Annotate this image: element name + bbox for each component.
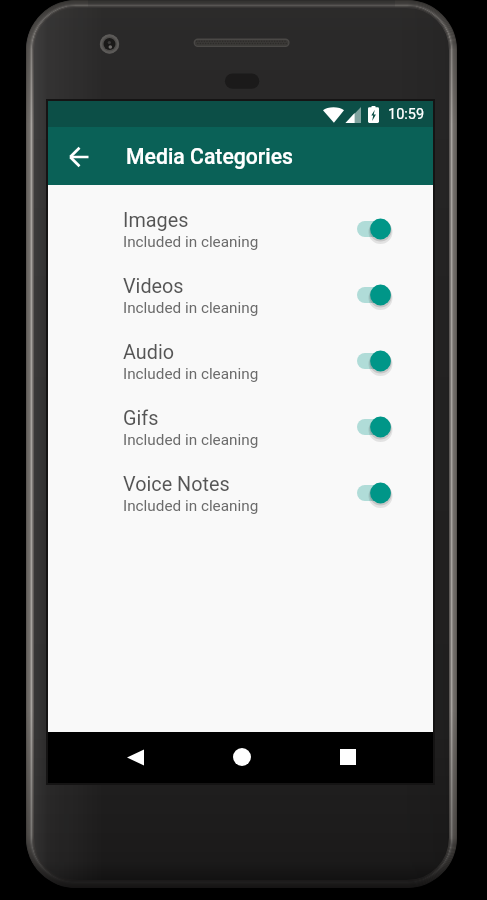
button[interactable]: Videos [48,271,433,337]
button[interactable]: Voice Notes [48,469,433,535]
button[interactable]: Toggle Audio [352,346,398,376]
staticText: Included in cleaning [123,365,259,383]
button[interactable]: Home [233,748,251,766]
staticText: Gifs [123,407,159,430]
staticText: Media Categories [126,144,294,169]
staticText: Included in cleaning [123,299,259,317]
button[interactable]: Toggle Videos [352,280,398,310]
button[interactable]: Toggle Gifs [352,412,398,442]
button[interactable]: Audio [48,337,433,403]
staticText: Videos [123,275,184,298]
staticText: Voice Notes [123,473,230,496]
staticText: Audio [123,341,174,364]
button[interactable]: Toggle Images [352,214,398,244]
button[interactable]: Gifs [48,403,433,469]
staticText: Included in cleaning [123,233,259,251]
staticText: Included in cleaning [123,497,259,515]
button[interactable]: Back [63,141,95,172]
staticText: Included in cleaning [123,431,259,449]
button[interactable]: Toggle Voice Notes [352,478,398,508]
staticText: Images [123,209,189,232]
button[interactable]: Back [127,749,144,766]
staticText: 10:59 [388,106,425,123]
button[interactable]: Images [48,205,433,271]
